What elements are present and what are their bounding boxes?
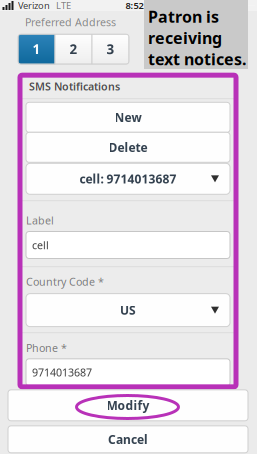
button[interactable]: 1 bbox=[18, 34, 55, 64]
button[interactable]: cell: 9714013687 bbox=[26, 163, 230, 194]
button[interactable]: Modify bbox=[8, 390, 248, 421]
staticText: 2 bbox=[69, 40, 77, 58]
button[interactable]: 2 bbox=[55, 34, 92, 64]
staticText: US bbox=[120, 302, 136, 318]
staticText: Cancel bbox=[108, 431, 148, 447]
staticText: SMS Notifications bbox=[29, 79, 120, 93]
staticText: Preferred Address bbox=[25, 15, 116, 29]
staticText: Patron is receiving text notices. bbox=[148, 6, 246, 70]
staticText: Label bbox=[26, 213, 54, 227]
staticText: LTE bbox=[56, 0, 71, 12]
staticText: Phone * bbox=[26, 341, 67, 355]
button[interactable]: 3 bbox=[92, 34, 129, 64]
staticText: Delete bbox=[108, 139, 147, 155]
staticText: Verizon bbox=[18, 0, 50, 12]
staticText: 9714013687 bbox=[32, 365, 92, 379]
staticText: Country Code * bbox=[26, 274, 104, 289]
button[interactable]: New bbox=[26, 102, 230, 132]
button[interactable]: US bbox=[26, 294, 230, 327]
staticText: 3 bbox=[106, 40, 114, 58]
staticText: Modify bbox=[106, 397, 149, 413]
staticText: cell bbox=[32, 238, 49, 252]
staticText: New bbox=[114, 109, 141, 125]
staticText: 8:52 AM bbox=[125, 0, 160, 12]
button[interactable]: Delete bbox=[26, 132, 230, 162]
staticText: cell: 9714013687 bbox=[79, 171, 176, 187]
staticText: 1 bbox=[32, 40, 40, 58]
button[interactable]: Cancel bbox=[8, 426, 248, 453]
